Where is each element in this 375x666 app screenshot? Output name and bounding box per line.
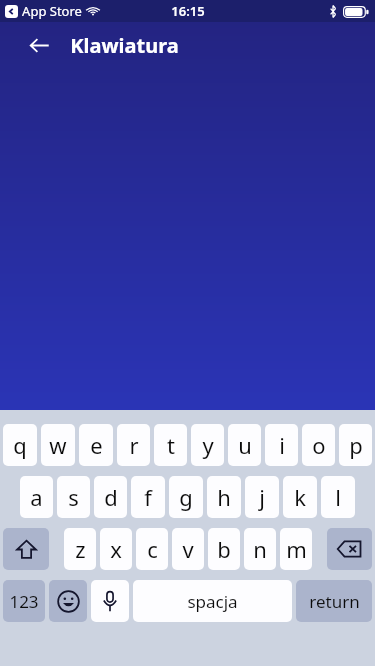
staticText: z xyxy=(75,534,86,564)
staticText: i xyxy=(279,430,285,460)
staticText: k xyxy=(294,482,306,512)
button[interactable]: Emoji xyxy=(49,580,87,622)
button[interactable]: w xyxy=(41,424,75,466)
button[interactable]: t xyxy=(154,424,187,466)
staticText: Klawiatura xyxy=(70,32,179,59)
staticText: f xyxy=(144,482,152,512)
staticText: b xyxy=(217,534,231,564)
staticText: return xyxy=(309,590,360,613)
button[interactable]: a xyxy=(20,476,53,518)
button[interactable]: i xyxy=(265,424,298,466)
staticText: n xyxy=(253,534,267,564)
button[interactable]: Dictation xyxy=(91,580,129,622)
button[interactable]: o xyxy=(302,424,335,466)
staticText: a xyxy=(30,482,43,512)
button[interactable]: l xyxy=(321,476,355,518)
button[interactable]: d xyxy=(94,476,127,518)
button[interactable]: e xyxy=(79,424,113,466)
staticText: x xyxy=(110,534,122,564)
button[interactable]: j xyxy=(245,476,279,518)
staticText: t xyxy=(167,430,175,460)
staticText: d xyxy=(104,482,118,512)
staticText: y xyxy=(202,430,214,460)
staticText: v xyxy=(182,534,194,564)
staticText: s xyxy=(68,482,79,512)
button[interactable]: Backspace xyxy=(327,528,372,570)
button[interactable]: s xyxy=(57,476,90,518)
button[interactable]: Shift xyxy=(3,528,49,570)
staticText: App Store xyxy=(22,2,82,20)
staticText: u xyxy=(238,430,252,460)
staticText: o xyxy=(312,430,326,460)
button[interactable]: c xyxy=(136,528,168,570)
staticText: spacja xyxy=(187,590,238,613)
staticText: g xyxy=(179,482,193,512)
button[interactable]: return xyxy=(296,580,372,622)
button[interactable]: y xyxy=(191,424,224,466)
button[interactable]: v xyxy=(172,528,204,570)
button[interactable]: b xyxy=(208,528,240,570)
button[interactable]: g xyxy=(169,476,203,518)
staticText: j xyxy=(259,482,265,512)
button[interactable]: f xyxy=(131,476,165,518)
button[interactable]: h xyxy=(207,476,241,518)
button[interactable]: m xyxy=(280,528,312,570)
button[interactable]: Back to App Store xyxy=(5,5,18,18)
button[interactable]: spacja xyxy=(133,580,292,622)
staticText: r xyxy=(129,430,139,460)
staticText: q xyxy=(13,430,27,460)
button[interactable]: p xyxy=(339,424,372,466)
staticText: c xyxy=(147,534,158,564)
button[interactable]: q xyxy=(3,424,37,466)
staticText: h xyxy=(217,482,231,512)
button[interactable]: n xyxy=(244,528,276,570)
staticText: m xyxy=(286,534,307,564)
staticText: 16:15 xyxy=(171,2,205,20)
button[interactable]: x xyxy=(100,528,132,570)
button[interactable]: 123 xyxy=(3,580,45,622)
button[interactable]: u xyxy=(228,424,261,466)
staticText: p xyxy=(349,430,363,460)
staticText: 123 xyxy=(9,590,39,613)
button[interactable]: Back xyxy=(22,28,56,62)
button[interactable]: z xyxy=(64,528,96,570)
button[interactable]: k xyxy=(283,476,317,518)
staticText: w xyxy=(49,430,67,460)
staticText: e xyxy=(90,430,103,460)
button[interactable]: r xyxy=(117,424,150,466)
staticText: l xyxy=(335,482,341,512)
